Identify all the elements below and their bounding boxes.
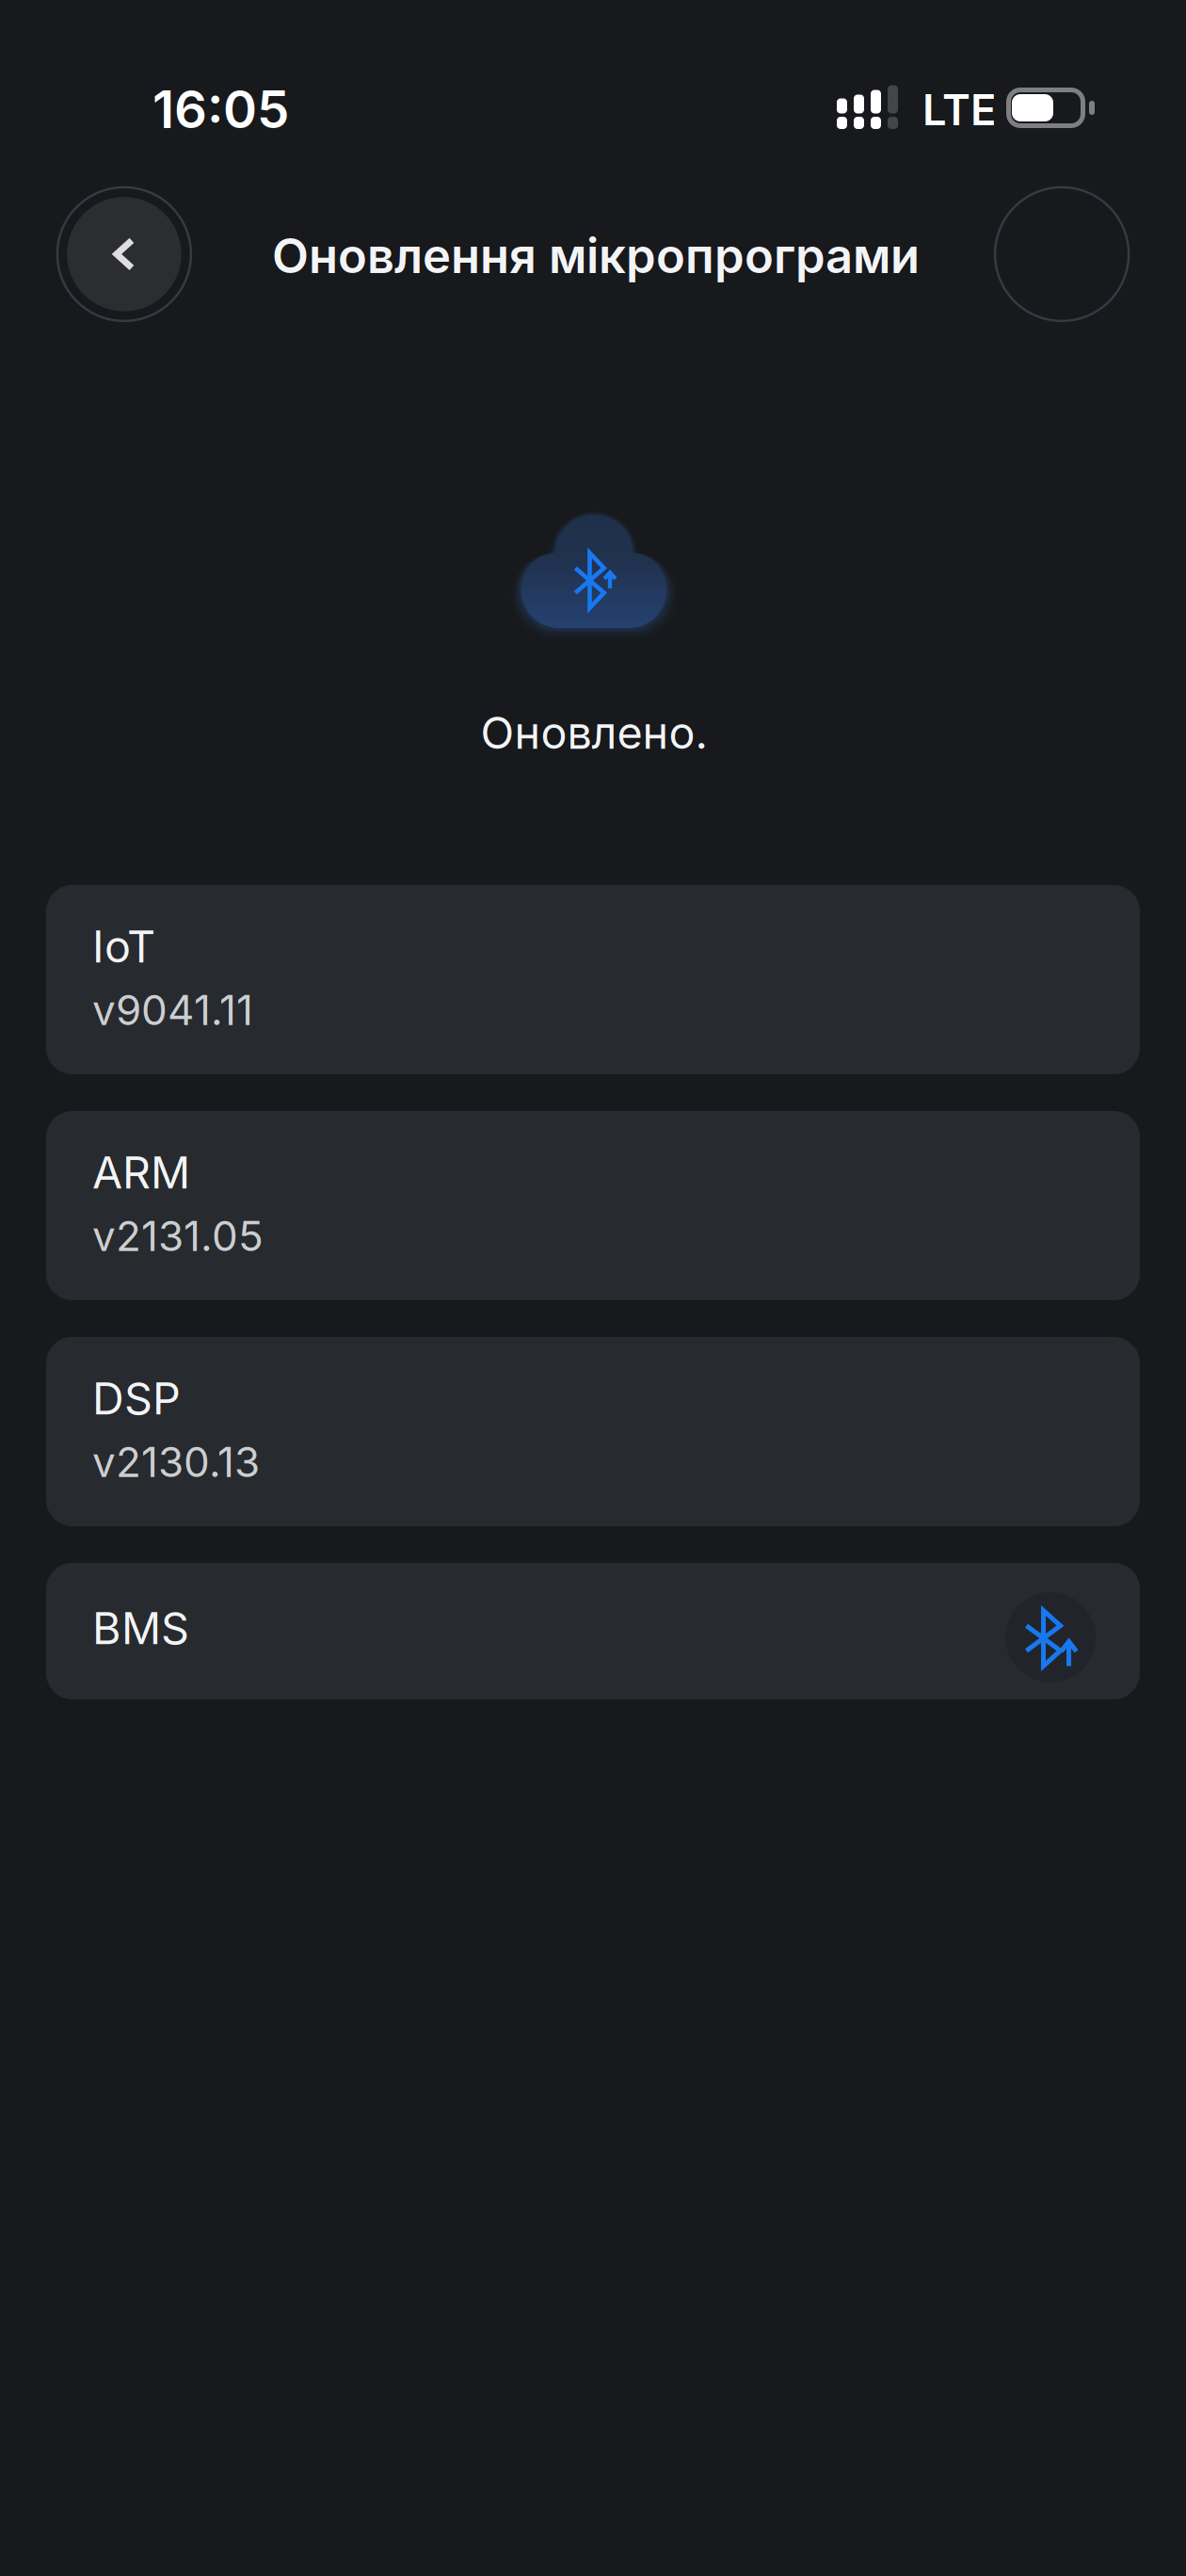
button[interactable]: DSP [46,1337,1140,1526]
staticText: BMS [92,1602,189,1655]
staticText: DSP [92,1372,181,1425]
staticText: 16:05 [152,78,289,140]
staticText: v9041.11 [92,985,253,1035]
staticText: Оновлення мікропрограми [272,227,920,285]
button[interactable]: Options [993,185,1131,323]
staticText: LTE [922,84,996,135]
staticText: v2131.05 [92,1211,264,1261]
staticText: v2130.13 [92,1437,260,1487]
staticText: ARM [92,1146,190,1199]
staticText: IoT [92,920,155,973]
button[interactable]: IoT [46,885,1140,1074]
button[interactable]: ARM [46,1111,1140,1300]
staticText: Оновлено. [481,706,707,759]
button[interactable]: Back [55,185,193,323]
button[interactable]: BMS [46,1563,1140,1699]
